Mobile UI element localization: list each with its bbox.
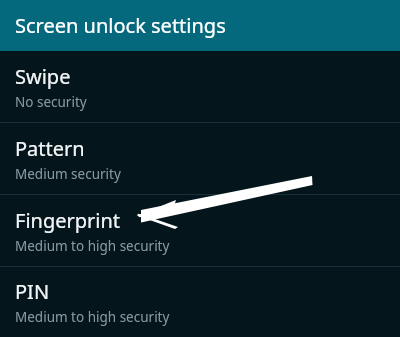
button[interactable]: PIN bbox=[0, 267, 400, 337]
staticText: PIN bbox=[15, 278, 50, 305]
button[interactable]: Pattern bbox=[0, 123, 400, 194]
staticText: No security bbox=[15, 93, 87, 111]
staticText: Medium security bbox=[15, 165, 121, 183]
staticText: Swipe bbox=[15, 63, 71, 90]
button[interactable]: Fingerprint bbox=[0, 195, 400, 266]
staticText: Screen unlock settings bbox=[15, 12, 226, 39]
staticText: Fingerprint bbox=[15, 207, 121, 234]
staticText: Medium to high security bbox=[15, 308, 170, 326]
button[interactable]: Swipe bbox=[0, 51, 400, 122]
staticText: Pattern bbox=[15, 135, 85, 162]
staticText: Medium to high security bbox=[15, 237, 170, 255]
other: Arrow pointing to Fingerprint bbox=[0, 0, 400, 337]
